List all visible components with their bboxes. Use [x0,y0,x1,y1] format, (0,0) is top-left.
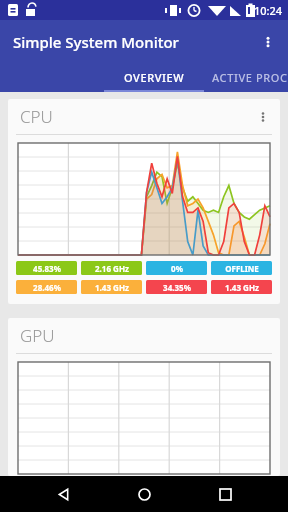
staticText: 45.83% [33,263,61,274]
button[interactable]: OFFLINE [211,261,272,275]
button[interactable]: 34.35% [146,280,207,294]
staticText: 0% [171,263,183,274]
staticText: OFFLINE [225,263,259,274]
button[interactable]: Back [45,476,81,512]
button[interactable]: Home [126,476,162,512]
staticText: 28.46% [33,282,61,293]
staticText: ACTIVE PROC [212,70,288,85]
button[interactable]: More options [248,22,288,62]
staticText: 1.43 GHz [95,282,129,293]
button[interactable]: CPU [8,99,280,304]
staticText: CPU [20,105,53,128]
button[interactable]: OVERVIEW [104,63,204,92]
button[interactable]: Recent apps [207,476,243,512]
button[interactable]: CPU card options [246,100,280,134]
button[interactable]: ACTIVE PROC [204,63,288,92]
staticText: 10:24 [254,3,283,18]
button[interactable]: 45.83% [16,261,77,275]
staticText: 2.16 GHz [95,263,129,274]
button[interactable]: 28.46% [16,280,77,294]
staticText: 1.43 GHz [225,282,259,293]
button[interactable]: 1.43 GHz [81,280,142,294]
staticText: GPU [20,324,55,347]
button[interactable]: 2.16 GHz [81,261,142,275]
button[interactable]: 0% [146,261,207,275]
staticText: 34.35% [163,282,191,293]
staticText: OVERVIEW [124,70,185,85]
button[interactable]: 1.43 GHz [211,280,272,294]
button[interactable]: GPU [8,318,280,476]
staticText: Simple System Monitor [13,32,179,52]
